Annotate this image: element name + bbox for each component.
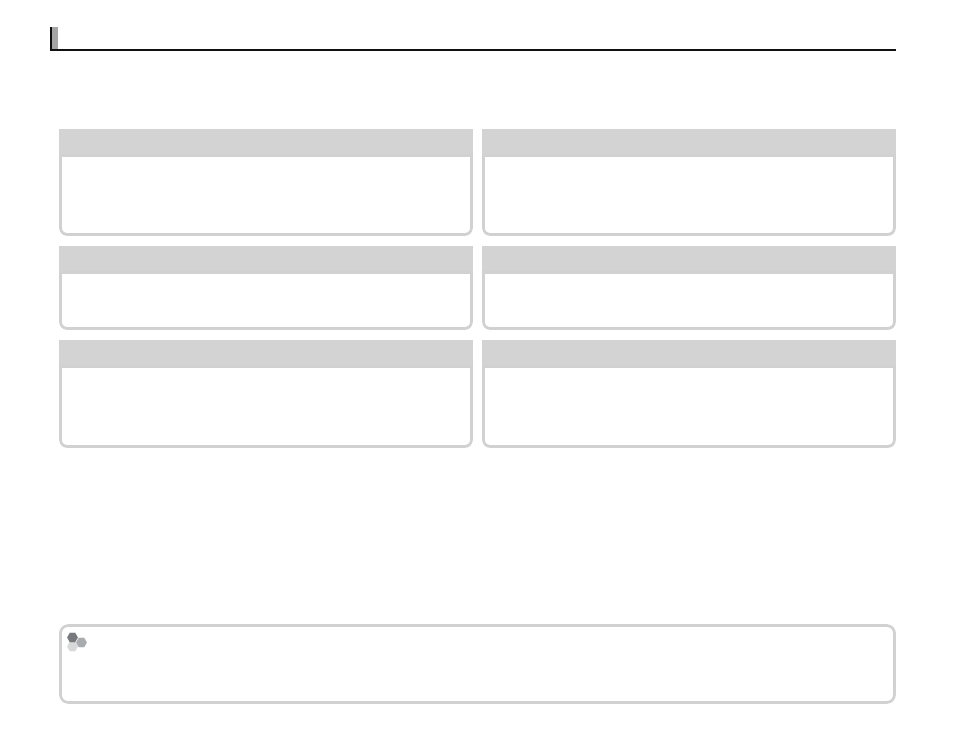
button[interactable]: Card 5 <box>59 340 473 448</box>
button[interactable]: Card 3 <box>59 246 473 330</box>
button[interactable]: Card 2 <box>482 129 896 236</box>
button[interactable]: Selected tab <box>50 27 58 49</box>
button[interactable]: Card 6 <box>482 340 896 448</box>
button[interactable]: Card 1 <box>59 129 473 236</box>
button[interactable]: About <box>59 624 896 704</box>
button[interactable]: Card 4 <box>482 246 896 330</box>
